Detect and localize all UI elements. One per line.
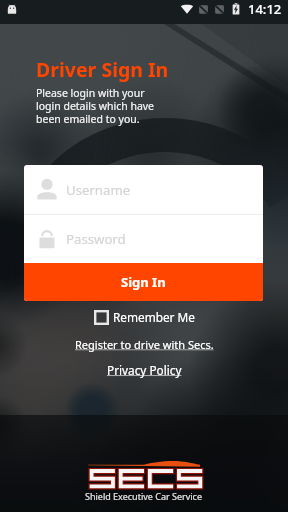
button[interactable]: Privacy Policy (107, 362, 182, 378)
staticText: Shield Executive Car Service (85, 490, 203, 502)
button[interactable]: Password (24, 215, 263, 263)
button[interactable]: Register to drive with Secs. (75, 337, 214, 352)
staticText: Remember Me (113, 309, 195, 325)
staticText: 14:12 (248, 0, 282, 18)
staticText: Password (66, 230, 126, 248)
button[interactable]: Sign In (24, 263, 263, 301)
button[interactable]: Remember Me (94, 309, 195, 325)
staticText: Username (66, 181, 131, 199)
button[interactable]: Username (24, 165, 263, 214)
staticText: Please login with your login details whi… (36, 86, 155, 126)
staticText: Driver Sign In (36, 56, 169, 83)
staticText: Sign In (121, 273, 166, 291)
